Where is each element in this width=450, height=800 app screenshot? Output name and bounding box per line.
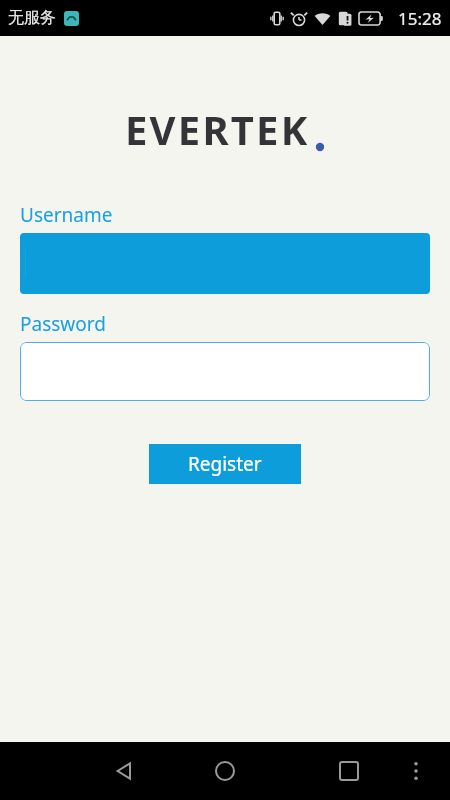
button[interactable]: More options: [396, 751, 436, 791]
button[interactable]: [20, 233, 430, 294]
staticText: Username: [20, 202, 113, 228]
staticText: 无服务: [8, 8, 56, 28]
staticText: EVERTEK: [125, 102, 310, 156]
button[interactable]: Home: [201, 747, 249, 795]
staticText: 15:28: [398, 7, 442, 30]
button[interactable]: Recent apps: [325, 747, 373, 795]
button[interactable]: Register: [149, 444, 301, 484]
staticText: Password: [20, 311, 106, 337]
button[interactable]: Back: [100, 747, 148, 795]
button[interactable]: [20, 342, 430, 401]
staticText: Register: [188, 451, 262, 477]
